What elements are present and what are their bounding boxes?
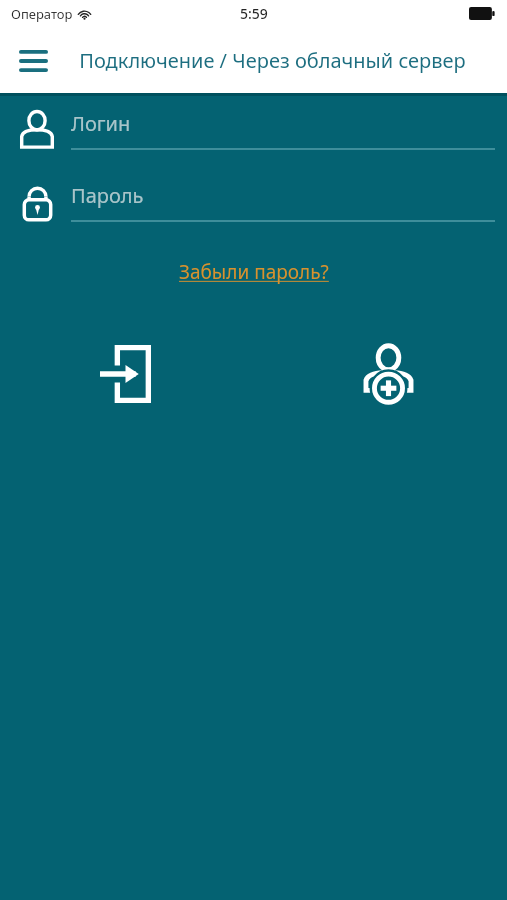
staticText: 5:59 (240, 4, 268, 23)
staticText: Оператор (11, 5, 73, 23)
staticText: Пароль (71, 182, 144, 209)
button[interactable]: Меню (11, 38, 56, 83)
button[interactable]: Пароль (71, 182, 495, 222)
button[interactable]: Регистрация (347, 333, 429, 415)
button[interactable]: Логин (71, 110, 495, 150)
button[interactable]: Войти (84, 333, 166, 415)
staticText: Забыли пароль? (179, 259, 329, 285)
button[interactable]: Забыли пароль? (171, 255, 337, 289)
staticText: Логин (71, 110, 131, 137)
staticText: Подключение / Через облачный сервер (79, 47, 466, 74)
